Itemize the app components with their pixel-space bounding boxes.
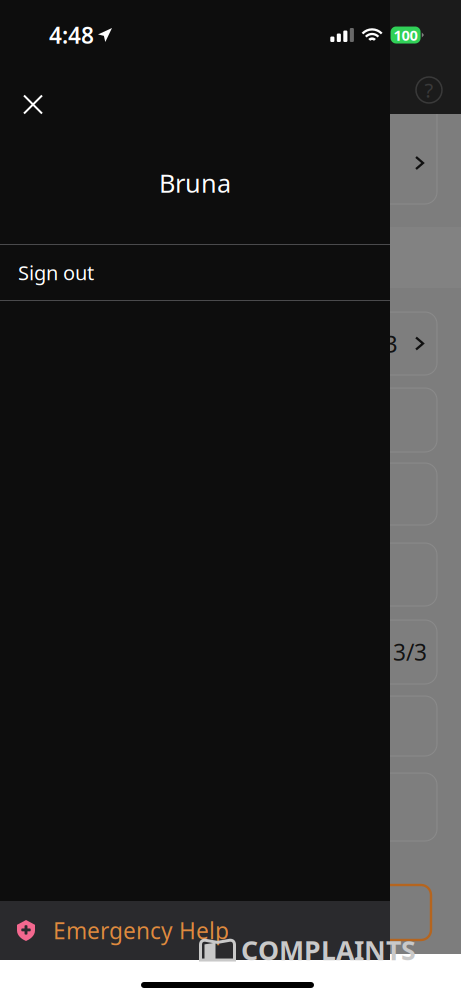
staticText: ? (424, 77, 433, 103)
button[interactable]: Close (9, 80, 57, 128)
staticText: COMPLAINTS (241, 932, 416, 968)
staticText: 3/3 (393, 637, 427, 667)
button[interactable]: Emergency Help (0, 901, 390, 960)
staticText: Bruna (159, 166, 231, 200)
button[interactable]: Primary action (0, 885, 461, 940)
button[interactable]: Help (407, 68, 451, 112)
staticText: 3 (384, 328, 398, 359)
staticText: 4:48 (49, 20, 94, 50)
button[interactable]: Sign out (0, 245, 390, 300)
staticText: Sign out (18, 259, 94, 286)
staticText: 100 (394, 25, 418, 45)
staticText: Emergency Help (53, 915, 229, 945)
